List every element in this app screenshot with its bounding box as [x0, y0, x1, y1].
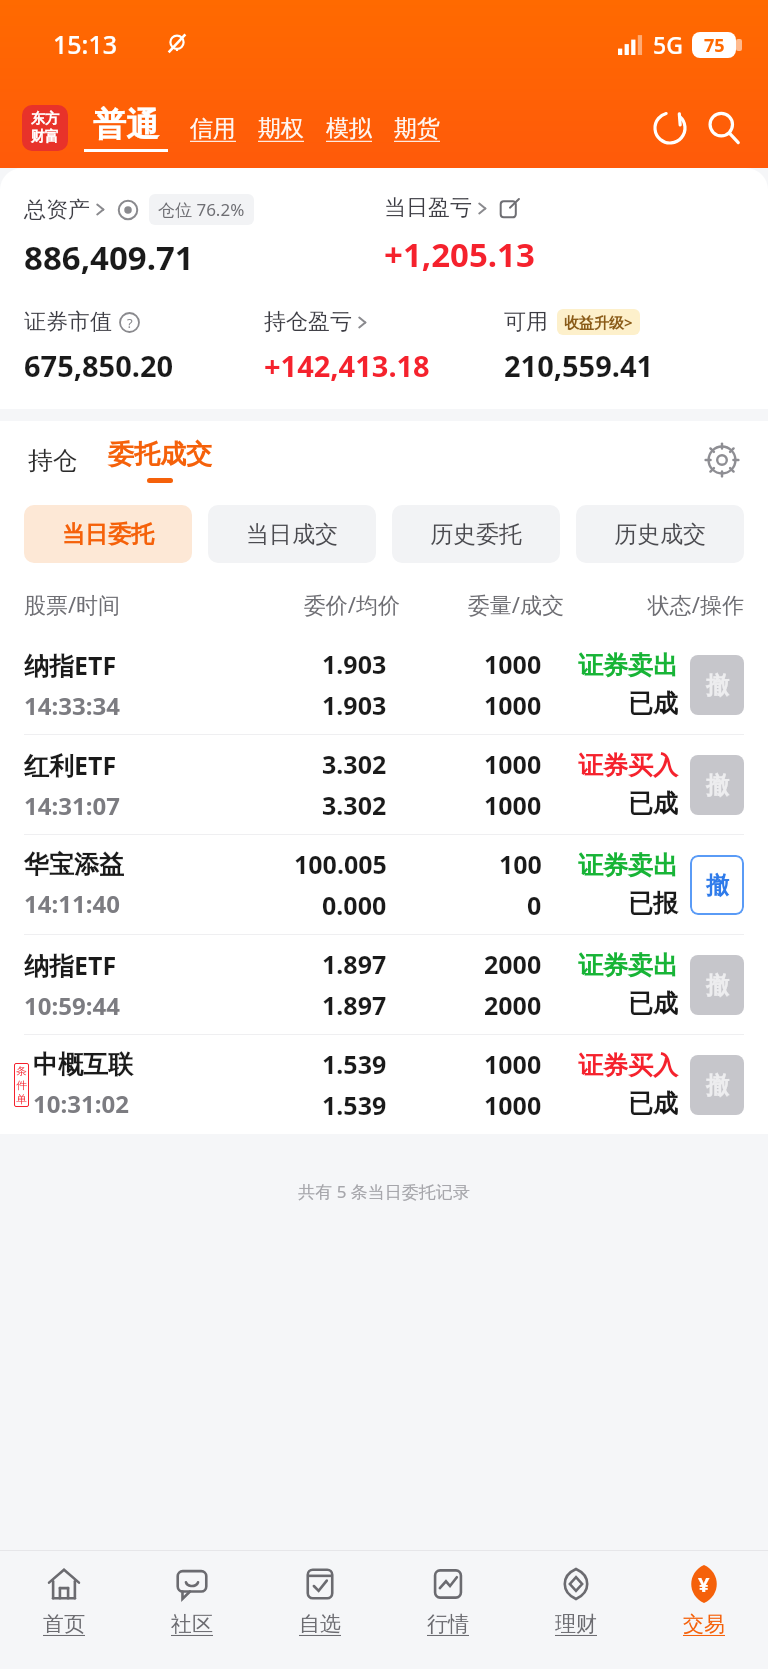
staticText: 1000: [484, 747, 542, 781]
staticText: 首页: [43, 1611, 85, 1637]
staticText: 自选: [299, 1611, 341, 1637]
staticText: 证券卖出: [578, 950, 678, 981]
staticText: 条: [16, 1064, 27, 1078]
button[interactable]: 首页: [0, 1551, 128, 1669]
button[interactable]: 条: [0, 1035, 768, 1134]
staticText: 已成: [628, 1088, 678, 1119]
button[interactable]: ¥: [640, 1551, 768, 1669]
staticText: 委量/成交: [400, 589, 564, 619]
button[interactable]: Help: [119, 312, 140, 333]
staticText: 当日盈亏: [384, 194, 472, 222]
button[interactable]: 红利ETF: [0, 735, 768, 834]
staticText: 华宝添益: [24, 849, 124, 880]
staticText: 210,559.41: [504, 346, 654, 385]
button[interactable]: Search: [702, 106, 746, 150]
staticText: 1.539: [322, 1047, 387, 1081]
button[interactable]: 持仓盈亏: [264, 308, 369, 336]
button[interactable]: 撤: [690, 655, 744, 715]
staticText: 期货: [394, 114, 440, 143]
staticText: 信用: [190, 114, 236, 143]
staticText: 14:11:40: [24, 887, 120, 920]
staticText: ?: [127, 314, 133, 332]
button[interactable]: 自选: [256, 1551, 384, 1669]
staticText: 14:31:07: [24, 789, 120, 822]
button[interactable]: 理财: [512, 1551, 640, 1669]
staticText: 已报: [628, 888, 678, 919]
button[interactable]: 撤: [690, 755, 744, 815]
staticText: 证券卖出: [578, 850, 678, 881]
staticText: 持仓: [28, 445, 78, 476]
staticText: 2000: [484, 988, 542, 1022]
staticText: 仓位 76.2%: [158, 198, 245, 221]
staticText: 股票/时间: [24, 589, 220, 619]
staticText: 普通: [93, 104, 159, 146]
staticText: 财富: [31, 128, 59, 146]
button[interactable]: 信用: [190, 114, 236, 143]
button[interactable]: 收益升级>: [557, 309, 640, 335]
button[interactable]: 持仓: [24, 437, 82, 484]
button[interactable]: 普通: [84, 104, 168, 152]
staticText: 2000: [484, 947, 542, 981]
staticText: 1000: [484, 788, 542, 822]
staticText: 1.897: [322, 988, 387, 1022]
staticText: 撤: [706, 1071, 729, 1100]
button[interactable]: 当日盈亏: [384, 194, 520, 222]
button[interactable]: 东方财富: [22, 105, 68, 151]
staticText: 红利ETF: [24, 748, 117, 782]
button[interactable]: 历史委托: [392, 505, 560, 563]
button[interactable]: 委托成交: [108, 438, 212, 483]
button[interactable]: 历史成交: [576, 505, 744, 563]
button[interactable]: 期货: [394, 114, 440, 143]
button[interactable]: 华宝添益: [0, 835, 768, 934]
staticText: +142,413.18: [264, 346, 430, 385]
button[interactable]: Settings: [702, 440, 742, 480]
staticText: 撤: [706, 671, 729, 700]
button[interactable]: 模拟: [326, 114, 372, 143]
button[interactable]: 撤: [690, 955, 744, 1015]
staticText: 886,409.71: [24, 235, 194, 280]
staticText: ¥: [698, 1571, 710, 1598]
staticText: 14:33:34: [24, 689, 120, 722]
button[interactable]: 当日成交: [208, 505, 376, 563]
staticText: 行情: [427, 1611, 469, 1637]
staticText: 证券买入: [578, 750, 678, 781]
staticText: 已成: [628, 788, 678, 819]
staticText: 0.000: [322, 888, 387, 922]
staticText: 单: [16, 1092, 27, 1106]
staticText: 社区: [171, 1611, 213, 1637]
staticText: 1.539: [322, 1088, 387, 1122]
button[interactable]: 撤: [690, 855, 744, 915]
staticText: 证券市值: [24, 308, 112, 336]
staticText: 期权: [258, 114, 304, 143]
staticText: 总资产: [24, 196, 90, 224]
button[interactable]: 社区: [128, 1551, 256, 1669]
staticText: 10:59:44: [24, 989, 120, 1022]
staticText: 撤: [706, 871, 729, 900]
staticText: 3.302: [322, 788, 387, 822]
staticText: 0: [527, 888, 542, 922]
button[interactable]: 总资产: [24, 194, 254, 225]
button[interactable]: 期权: [258, 114, 304, 143]
staticText: 当日成交: [246, 520, 338, 549]
button[interactable]: Refresh: [648, 106, 692, 150]
staticText: 纳指ETF: [24, 648, 117, 682]
staticText: +1,205.13: [384, 232, 535, 277]
button[interactable]: 当日委托: [24, 505, 192, 563]
staticText: 证券卖出: [578, 650, 678, 681]
button[interactable]: 纳指ETF: [0, 635, 768, 734]
staticText: 历史委托: [430, 520, 522, 549]
staticText: 撤: [706, 771, 729, 800]
staticText: 675,850.20: [24, 346, 174, 385]
staticText: 75: [704, 33, 725, 58]
staticText: 委价/均价: [220, 589, 400, 619]
staticText: 状态/操作: [564, 589, 744, 619]
button[interactable]: 纳指ETF: [0, 935, 768, 1034]
staticText: 已成: [628, 988, 678, 1019]
staticText: 证券买入: [578, 1050, 678, 1081]
button[interactable]: 撤: [690, 1055, 744, 1115]
staticText: 中概互联: [33, 1049, 133, 1080]
staticText: 委托成交: [108, 438, 212, 471]
staticText: 件: [16, 1078, 27, 1092]
button[interactable]: 行情: [384, 1551, 512, 1669]
staticText: 东方: [31, 110, 59, 128]
